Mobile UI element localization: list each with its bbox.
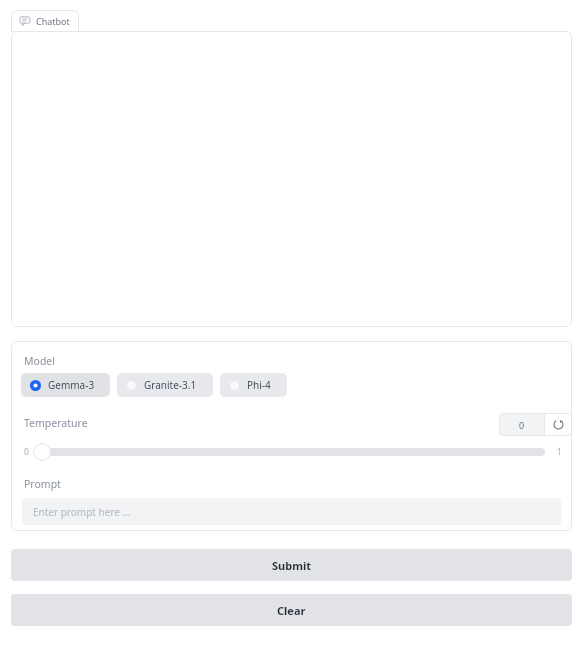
- staticText: Submit: [272, 558, 311, 573]
- button[interactable]: Reset temperature: [545, 413, 572, 436]
- staticText: Granite-3.1: [144, 378, 197, 392]
- button[interactable]: Enter prompt here ...: [22, 498, 561, 525]
- staticText: 0: [519, 419, 525, 431]
- button[interactable]: Phi-4: [220, 373, 287, 397]
- button[interactable]: 0: [499, 413, 544, 436]
- staticText: 0: [24, 446, 29, 458]
- button[interactable]: Gemma-3: [21, 373, 110, 397]
- staticText: Model: [24, 354, 55, 368]
- button[interactable]: Clear: [11, 594, 572, 626]
- button[interactable]: [37, 448, 545, 456]
- staticText: Clear: [277, 603, 306, 618]
- staticText: Gemma-3: [48, 378, 95, 392]
- button[interactable]: Temperature slider thumb: [33, 443, 51, 461]
- button[interactable]: Chatbot: [11, 10, 79, 32]
- staticText: 1: [557, 446, 562, 458]
- button[interactable]: Granite-3.1: [117, 373, 213, 397]
- staticText: Enter prompt here ...: [33, 505, 131, 519]
- staticText: Prompt: [24, 477, 61, 491]
- staticText: Phi-4: [247, 378, 271, 392]
- staticText: Temperature: [24, 416, 88, 430]
- button[interactable]: Submit: [11, 549, 572, 581]
- staticText: Chatbot: [36, 15, 70, 27]
